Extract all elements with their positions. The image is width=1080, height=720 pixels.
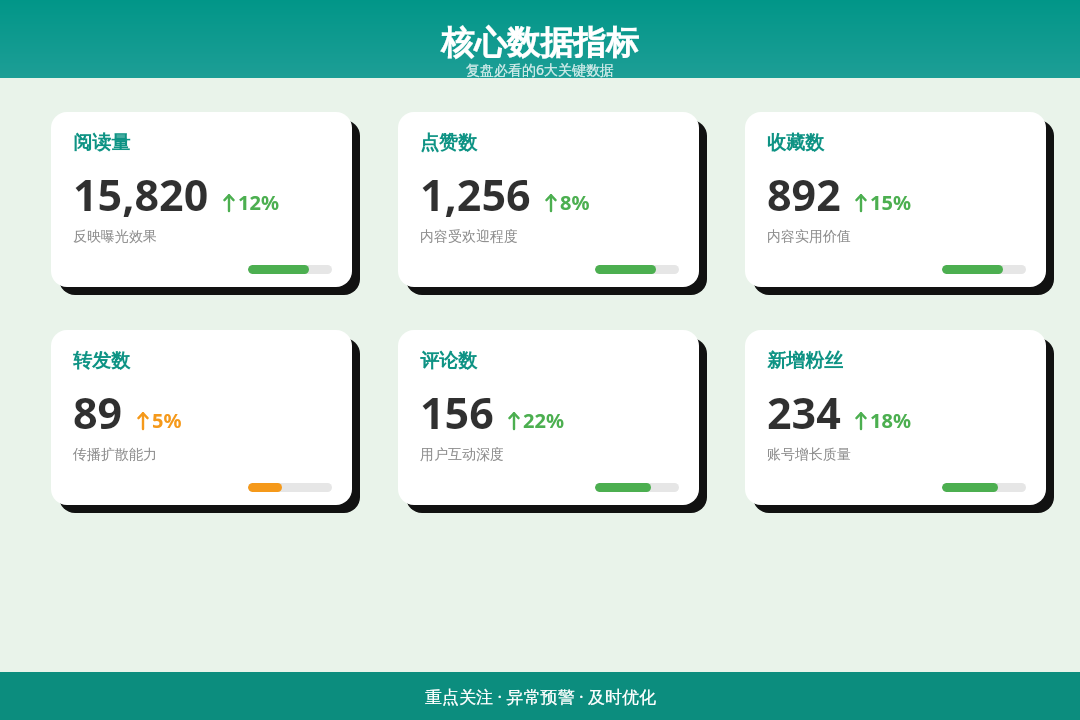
- other: 上升: [223, 194, 235, 211]
- staticText: 评论数: [420, 349, 477, 373]
- staticText: 234: [767, 383, 841, 442]
- button[interactable]: 阅读量: [51, 112, 352, 287]
- staticText: 点赞数: [420, 131, 477, 155]
- staticText: 重点关注 · 异常预警 · 及时优化: [425, 685, 656, 708]
- staticText: 用户互动深度: [420, 446, 504, 464]
- staticText: 12%: [238, 189, 279, 216]
- staticText: 18%: [870, 407, 911, 434]
- button[interactable]: 新增粉丝: [745, 330, 1046, 505]
- staticText: 内容受欢迎程度: [420, 228, 518, 246]
- staticText: 156: [420, 383, 494, 442]
- other: 上升: [855, 194, 867, 211]
- other: 上升: [508, 412, 520, 429]
- staticText: 内容实用价值: [767, 228, 851, 246]
- other: 上升: [545, 194, 557, 211]
- staticText: 8%: [560, 189, 590, 216]
- staticText: 账号增长质量: [767, 446, 851, 464]
- staticText: 阅读量: [73, 131, 130, 155]
- button[interactable]: 转发数: [51, 330, 352, 505]
- staticText: 反映曝光效果: [73, 228, 157, 246]
- staticText: 新增粉丝: [767, 349, 843, 373]
- other: 上升: [137, 412, 149, 429]
- staticText: 15%: [870, 189, 911, 216]
- staticText: 1,256: [420, 165, 531, 224]
- staticText: 15,820: [73, 165, 209, 224]
- staticText: 22%: [523, 407, 564, 434]
- staticText: 复盘必看的6大关键数据: [0, 60, 1080, 79]
- staticText: 核心数据指标: [0, 22, 1080, 64]
- staticText: 89: [73, 383, 123, 442]
- staticText: 收藏数: [767, 131, 824, 155]
- button[interactable]: 评论数: [398, 330, 699, 505]
- button[interactable]: 点赞数: [398, 112, 699, 287]
- staticText: 传播扩散能力: [73, 446, 157, 464]
- staticText: 892: [767, 165, 841, 224]
- button[interactable]: 收藏数: [745, 112, 1046, 287]
- other: 上升: [855, 412, 867, 429]
- staticText: 转发数: [73, 349, 130, 373]
- staticText: 5%: [152, 407, 182, 434]
